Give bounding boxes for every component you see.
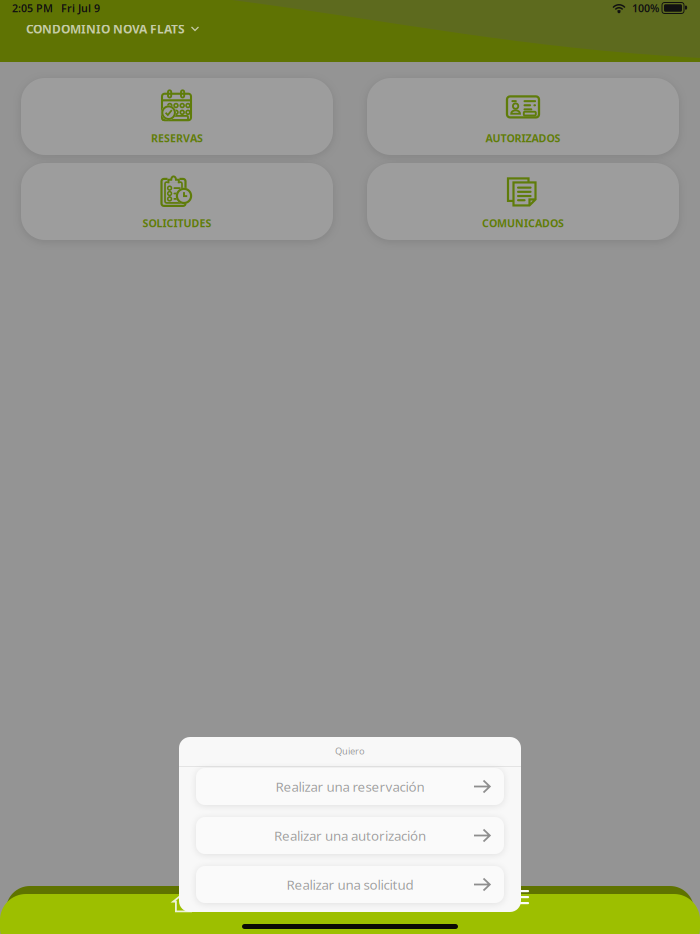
button[interactable]: Realizar una solicitud [196, 866, 504, 903]
button[interactable]: RESERVAS [21, 78, 333, 155]
staticText: COMUNICADOS [482, 216, 564, 230]
staticText: Realizar una solicitud [286, 876, 413, 893]
button[interactable]: AUTORIZADOS [367, 78, 679, 155]
staticText: Quiero [335, 745, 365, 757]
button[interactable]: Inicio [171, 892, 196, 913]
staticText: Realizar una autorización [274, 827, 426, 844]
button[interactable]: Realizar una autorización [196, 817, 504, 854]
staticText: CONDOMINIO NOVA FLATS [26, 21, 185, 37]
staticText: 2:05 PM [12, 1, 53, 15]
button[interactable]: COMUNICADOS [367, 163, 679, 240]
staticText: Realizar una reservación [275, 778, 424, 795]
staticText: 100% [632, 1, 659, 15]
staticText: RESERVAS [151, 131, 203, 145]
staticText: SOLICITUDES [142, 216, 211, 230]
staticText: Fri Jul 9 [61, 1, 100, 15]
button[interactable]: Realizar una reservación [196, 768, 504, 805]
button[interactable]: SOLICITUDES [21, 163, 333, 240]
button[interactable]: Menú [505, 890, 529, 905]
button[interactable]: CONDOMINIO NOVA FLATS [26, 21, 199, 37]
staticText: AUTORIZADOS [485, 131, 560, 145]
